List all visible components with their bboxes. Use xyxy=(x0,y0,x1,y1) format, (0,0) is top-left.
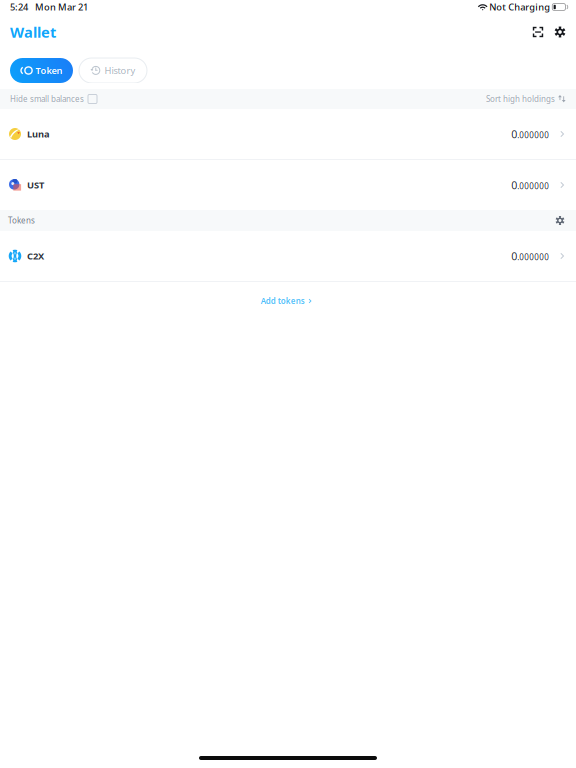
button[interactable]: Token xyxy=(10,58,73,83)
button[interactable]: History xyxy=(79,58,147,83)
staticText: Token xyxy=(35,64,62,77)
staticText: Sort high holdings xyxy=(486,94,555,104)
staticText: 0 xyxy=(511,249,517,263)
button[interactable]: Luna xyxy=(0,109,576,159)
staticText: Wallet xyxy=(10,22,56,42)
staticText: .000000 xyxy=(517,252,549,262)
button[interactable]: UST xyxy=(0,160,576,210)
staticText: 0 xyxy=(511,127,517,141)
button[interactable]: Hide small balances xyxy=(10,89,97,109)
button[interactable]: Manage tokens xyxy=(552,212,568,228)
staticText: Luna xyxy=(27,128,50,140)
staticText: UST xyxy=(27,179,44,191)
button[interactable]: C2X xyxy=(0,231,576,281)
staticText: .000000 xyxy=(517,181,549,191)
staticText: Not Charging xyxy=(489,1,550,13)
staticText: Tokens xyxy=(8,215,35,226)
staticText: C2X xyxy=(27,250,44,262)
staticText: Mon Mar 21 xyxy=(35,1,88,13)
button[interactable]: Scan QR code xyxy=(527,21,549,43)
button[interactable]: Add tokens xyxy=(261,282,315,320)
staticText: Add tokens xyxy=(261,296,305,306)
button[interactable]: Settings xyxy=(549,21,571,43)
staticText: .000000 xyxy=(517,130,549,140)
button[interactable]: Sort high holdings xyxy=(486,89,566,109)
staticText: 5:24 xyxy=(10,1,28,13)
staticText: 0 xyxy=(511,178,517,192)
staticText: Hide small balances xyxy=(10,94,84,104)
staticText: History xyxy=(104,64,135,77)
